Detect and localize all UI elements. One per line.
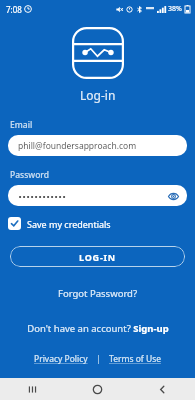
staticText: Log-in — [80, 87, 116, 103]
staticText: LOG-IN — [79, 251, 116, 263]
button[interactable]: Show password — [165, 188, 181, 204]
button[interactable]: phill@foundersapproach.com — [8, 135, 187, 156]
staticText: Password — [10, 169, 50, 181]
staticText: Email — [10, 119, 33, 131]
staticText: Don't have an account? Sign-up — [27, 322, 169, 335]
staticText: phill@foundersapproach.com — [18, 140, 137, 152]
button[interactable]: Forgot Password? — [50, 285, 146, 302]
button[interactable]: Save my credentials — [8, 215, 117, 232]
button[interactable]: Show password — [8, 185, 187, 206]
staticText: Privacy Policy — [34, 353, 88, 365]
staticText: Save my credentials — [27, 218, 111, 230]
staticText: 38% — [168, 4, 182, 14]
button[interactable]: Terms of Use — [106, 351, 165, 367]
button[interactable]: Don't have an account? Sign-up — [19, 320, 177, 337]
button[interactable]: Recents — [0, 378, 65, 400]
staticText: Terms of Use — [109, 353, 162, 365]
staticText: Forgot Password? — [58, 287, 138, 300]
button[interactable]: Privacy Policy — [31, 351, 91, 367]
button[interactable]: Back — [130, 378, 195, 400]
button[interactable]: Home — [65, 378, 130, 400]
staticText: | — [96, 353, 101, 365]
button[interactable]: LOG-IN — [10, 246, 185, 267]
staticText: 7:08 — [6, 4, 22, 15]
